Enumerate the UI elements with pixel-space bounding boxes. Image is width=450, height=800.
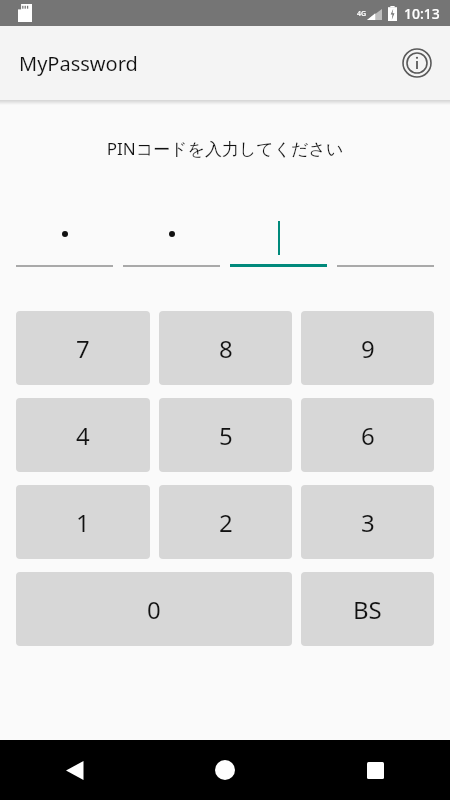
staticText: 8 [219, 332, 233, 365]
staticText: PINコードを入力してください [0, 137, 450, 160]
button[interactable]: 7 [16, 311, 150, 385]
staticText: 3 [361, 506, 375, 539]
button[interactable]: Info [394, 40, 440, 86]
staticText: 4G [357, 9, 367, 19]
staticText: 9 [361, 332, 375, 365]
button[interactable]: BS [301, 572, 434, 646]
button[interactable] [230, 219, 327, 267]
button[interactable]: 1 [16, 485, 150, 559]
button[interactable] [16, 219, 113, 267]
button[interactable]: Back [0, 740, 150, 800]
staticText: BS [353, 593, 382, 626]
staticText: 10:13 [404, 4, 440, 23]
staticText: 4 [76, 419, 90, 452]
button[interactable]: Recents [300, 740, 450, 800]
staticText: 7 [76, 332, 90, 365]
button[interactable]: 0 [16, 572, 292, 646]
staticText: 2 [219, 506, 233, 539]
staticText: 6 [361, 419, 375, 452]
staticText: 0 [147, 593, 161, 626]
button[interactable]: Home [165, 740, 285, 800]
staticText: 1 [76, 506, 90, 539]
staticText: MyPassword [19, 50, 138, 77]
button[interactable]: 3 [301, 485, 434, 559]
button[interactable]: 6 [301, 398, 434, 472]
button[interactable]: 4 [16, 398, 150, 472]
button[interactable] [337, 219, 434, 267]
button[interactable]: 8 [159, 311, 292, 385]
button[interactable]: 5 [159, 398, 292, 472]
button[interactable]: 9 [301, 311, 434, 385]
button[interactable]: 2 [159, 485, 292, 559]
staticText: 5 [219, 419, 233, 452]
button[interactable] [123, 219, 220, 267]
